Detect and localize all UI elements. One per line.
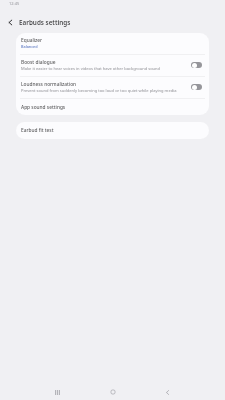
button[interactable]: Loudness normalization xyxy=(16,77,209,98)
button[interactable]: Equalizer xyxy=(16,33,209,54)
staticText: Balanced xyxy=(21,44,38,49)
button[interactable]: Boost dialogue xyxy=(16,55,209,76)
button[interactable]: Boost dialogue xyxy=(191,62,202,68)
staticText: 12:45 xyxy=(9,1,20,6)
button[interactable]: Earbud fit test xyxy=(16,122,209,139)
staticText: Earbuds settings xyxy=(19,18,71,27)
button[interactable]: Recent apps xyxy=(52,387,63,398)
staticText: Prevent sound from suddenly becoming too… xyxy=(21,88,177,94)
staticText: Loudness normalization xyxy=(21,81,77,88)
staticText: Make it easier to hear voices in videos … xyxy=(21,66,161,72)
staticText: Earbud fit test xyxy=(21,127,54,134)
staticText: App sound settings xyxy=(21,104,66,111)
button[interactable]: Navigate up xyxy=(5,17,16,28)
button[interactable]: Back xyxy=(162,387,173,398)
button[interactable]: Home xyxy=(107,386,118,397)
staticText: Equalizer xyxy=(21,37,43,44)
staticText: Boost dialogue xyxy=(21,59,56,66)
button[interactable]: Loudness normalization xyxy=(191,84,202,90)
button[interactable]: App sound settings xyxy=(16,99,209,115)
